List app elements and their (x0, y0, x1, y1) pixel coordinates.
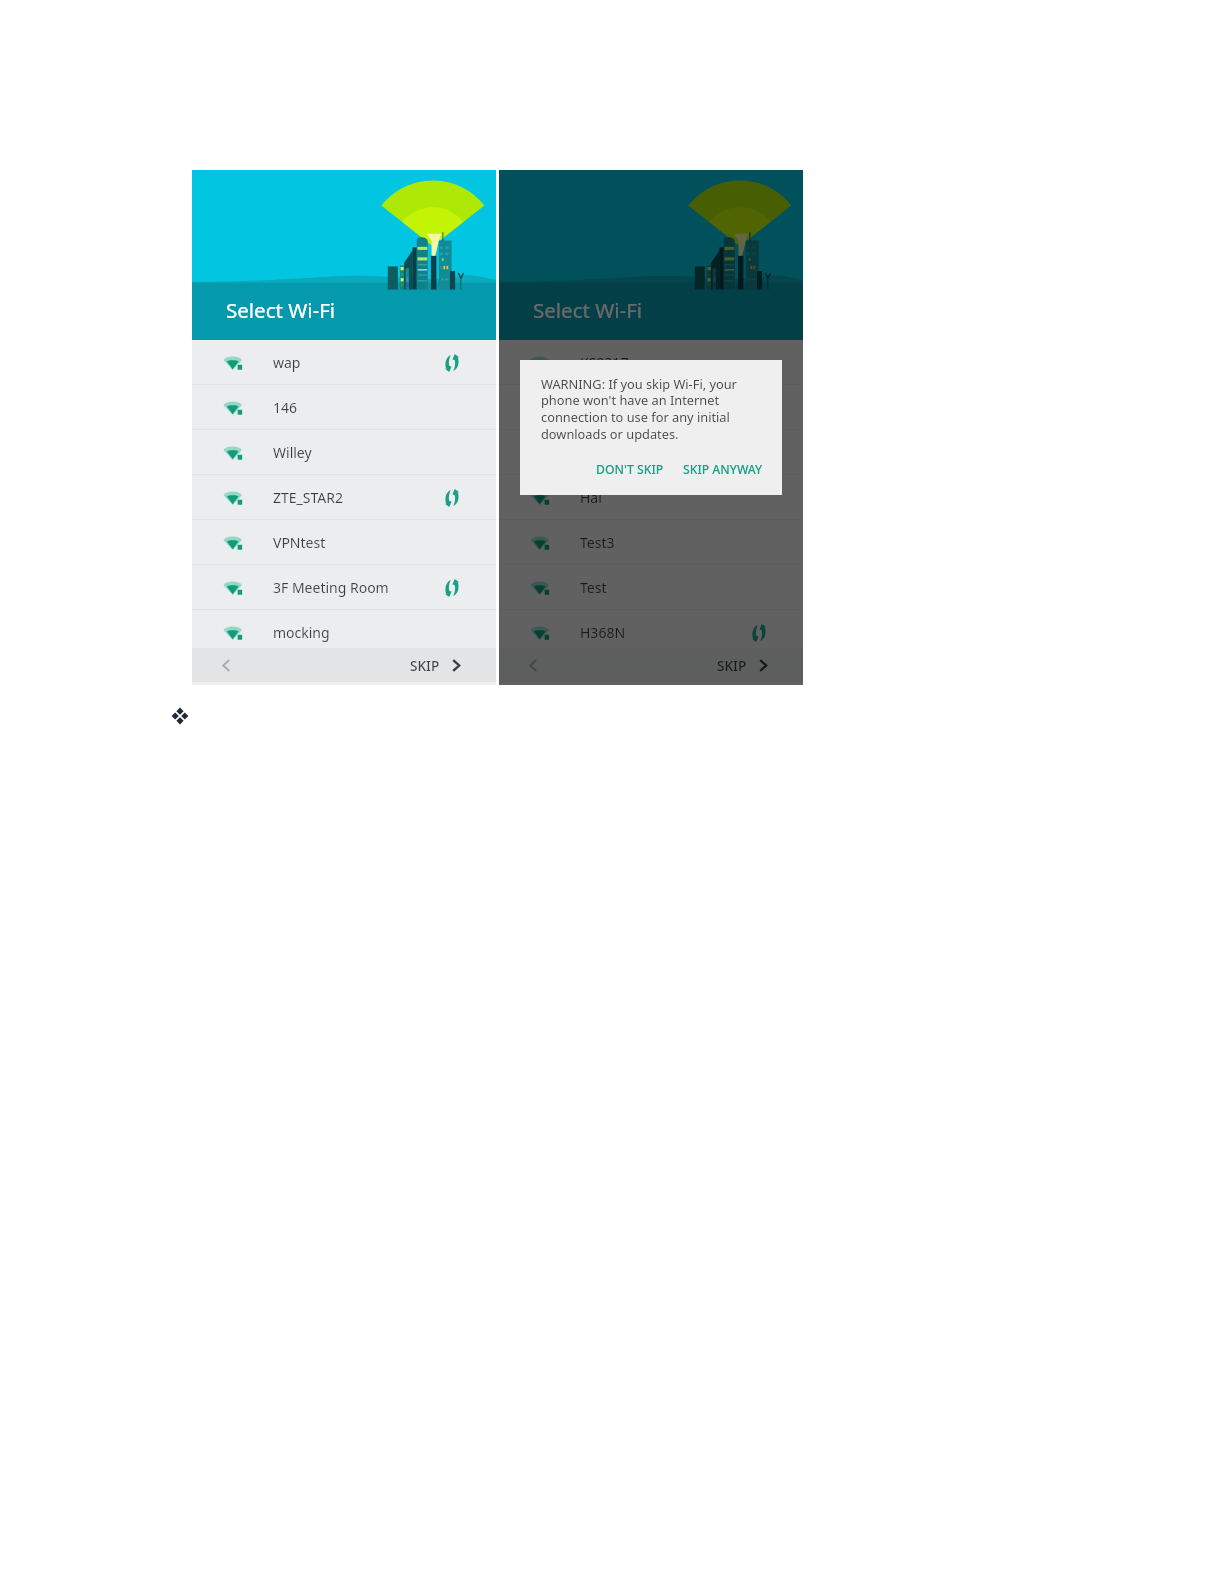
staticText: DON'T SKIP (596, 461, 664, 478)
button[interactable]: 3F Meeting Room (192, 565, 496, 610)
button[interactable]: KS8317 (499, 340, 803, 385)
staticText: SKIP (410, 656, 440, 675)
staticText: Select Wi-Fi (533, 296, 643, 324)
staticText: KS8317 (580, 353, 629, 372)
button[interactable]: Xperia (499, 430, 803, 475)
button[interactable]: VPNtest (192, 520, 496, 565)
button[interactable]: SKIP (699, 648, 803, 682)
button[interactable]: mocking (192, 610, 496, 655)
button[interactable]: Test (499, 565, 803, 610)
button[interactable]: DON'T SKIP (590, 457, 670, 482)
button[interactable]: ZTE_STAR2 (192, 475, 496, 520)
staticText: Willey (273, 443, 312, 462)
staticText: Test (580, 578, 607, 597)
button[interactable]: SKIP (392, 648, 496, 682)
button[interactable]: Willey (192, 430, 496, 475)
staticText: OPPO (580, 398, 619, 417)
staticText: SKIP ANYWAY (683, 461, 763, 478)
staticText: Select Wi-Fi (226, 296, 336, 324)
button[interactable]: Test3 (499, 520, 803, 565)
button[interactable]: Hai (499, 475, 803, 520)
staticText: 3F Meeting Room (273, 578, 389, 597)
staticText: mocking (273, 623, 330, 642)
button[interactable]: 146 (192, 385, 496, 430)
button[interactable]: SKIP ANYWAY (677, 457, 769, 482)
staticText: ZTE_STAR2 (273, 488, 343, 507)
staticText: H368N (580, 623, 626, 642)
button[interactable]: OPPO (499, 385, 803, 430)
staticText: wap (273, 353, 301, 372)
staticText: SKIP (717, 656, 747, 675)
button[interactable]: wap (192, 340, 496, 385)
button[interactable]: Back (192, 648, 260, 682)
staticText: 146 (273, 398, 298, 417)
staticText: VPNtest (273, 533, 326, 552)
staticText: Test3 (580, 533, 615, 552)
staticText: WARNING: If you skip Wi-Fi, your phone w… (541, 375, 737, 443)
staticText: Hai (580, 488, 602, 507)
button[interactable]: H368N (499, 610, 803, 655)
